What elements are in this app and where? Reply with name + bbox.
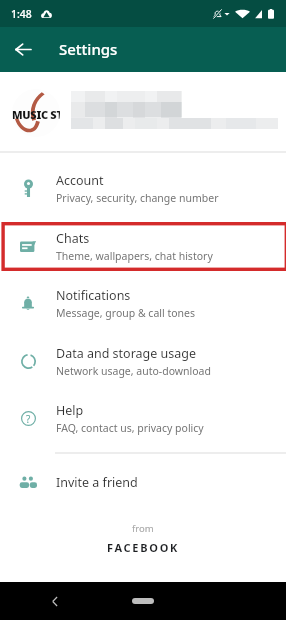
staticText: Account (56, 172, 104, 189)
button[interactable]: Data and storage usage (0, 332, 286, 390)
button[interactable]: Account (0, 159, 286, 217)
staticText: FACEBOOK (107, 540, 180, 555)
staticText: Settings (59, 39, 118, 59)
staticText: Message, group & call tones (56, 306, 196, 320)
staticText: Invite a friend (56, 474, 138, 491)
button[interactable]: Home (132, 598, 154, 604)
staticText: Privacy, security, change number (56, 191, 219, 205)
staticText: FAQ, contact us, privacy policy (56, 421, 204, 435)
button[interactable]: Back (39, 585, 71, 617)
button[interactable]: MUSIC STUDIO (0, 72, 286, 151)
staticText: Help (56, 402, 84, 419)
button[interactable]: Notifications (0, 274, 286, 332)
staticText: Data and storage usage (56, 345, 197, 362)
staticText: from (132, 522, 154, 535)
staticText: Chats (56, 230, 90, 247)
staticText: Notifications (56, 287, 131, 304)
staticText: Network usage, auto-download (56, 364, 211, 378)
staticText: MUSIC STUDIO (12, 107, 60, 122)
staticText: 1:48 (11, 7, 32, 21)
staticText: ? (26, 412, 31, 426)
button[interactable]: ? (0, 389, 286, 447)
staticText: Theme, wallpapers, chat history (56, 249, 213, 263)
button[interactable]: Navigate up (0, 27, 45, 72)
button[interactable]: Invite a friend (0, 463, 286, 501)
button[interactable]: Chats (0, 217, 286, 275)
